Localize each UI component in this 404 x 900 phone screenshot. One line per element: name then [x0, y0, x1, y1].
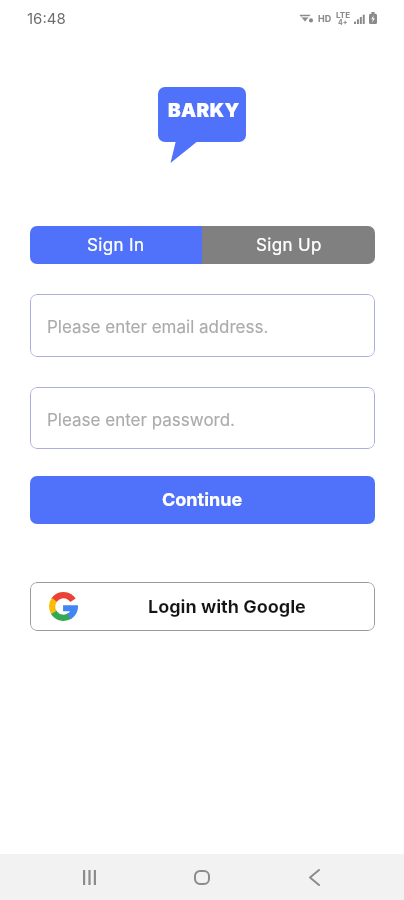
button[interactable]: Continue — [30, 476, 375, 524]
button[interactable]: Login with Google — [30, 582, 375, 631]
button[interactable]: Please enter email address. — [30, 294, 375, 357]
staticText: LTE — [336, 10, 350, 20]
button[interactable]: Home — [145, 854, 258, 900]
button[interactable]: Sign Up — [202, 226, 375, 264]
staticText: Please enter password. — [47, 410, 235, 431]
staticText: HD — [318, 13, 332, 24]
button[interactable]: Sign In — [30, 226, 202, 264]
staticText: Sign In — [87, 235, 145, 256]
button[interactable]: Back — [258, 854, 371, 900]
staticText: Please enter email address. — [47, 317, 269, 338]
button[interactable]: Recent apps — [33, 854, 145, 900]
staticText: BARKY — [168, 99, 240, 122]
staticText: Continue — [162, 489, 243, 511]
button[interactable]: Please enter password. — [30, 387, 375, 449]
staticText: 4+ — [338, 18, 348, 26]
staticText: Sign Up — [256, 235, 322, 256]
staticText: Login with Google — [148, 596, 306, 618]
staticText: 16:48 — [27, 9, 66, 27]
